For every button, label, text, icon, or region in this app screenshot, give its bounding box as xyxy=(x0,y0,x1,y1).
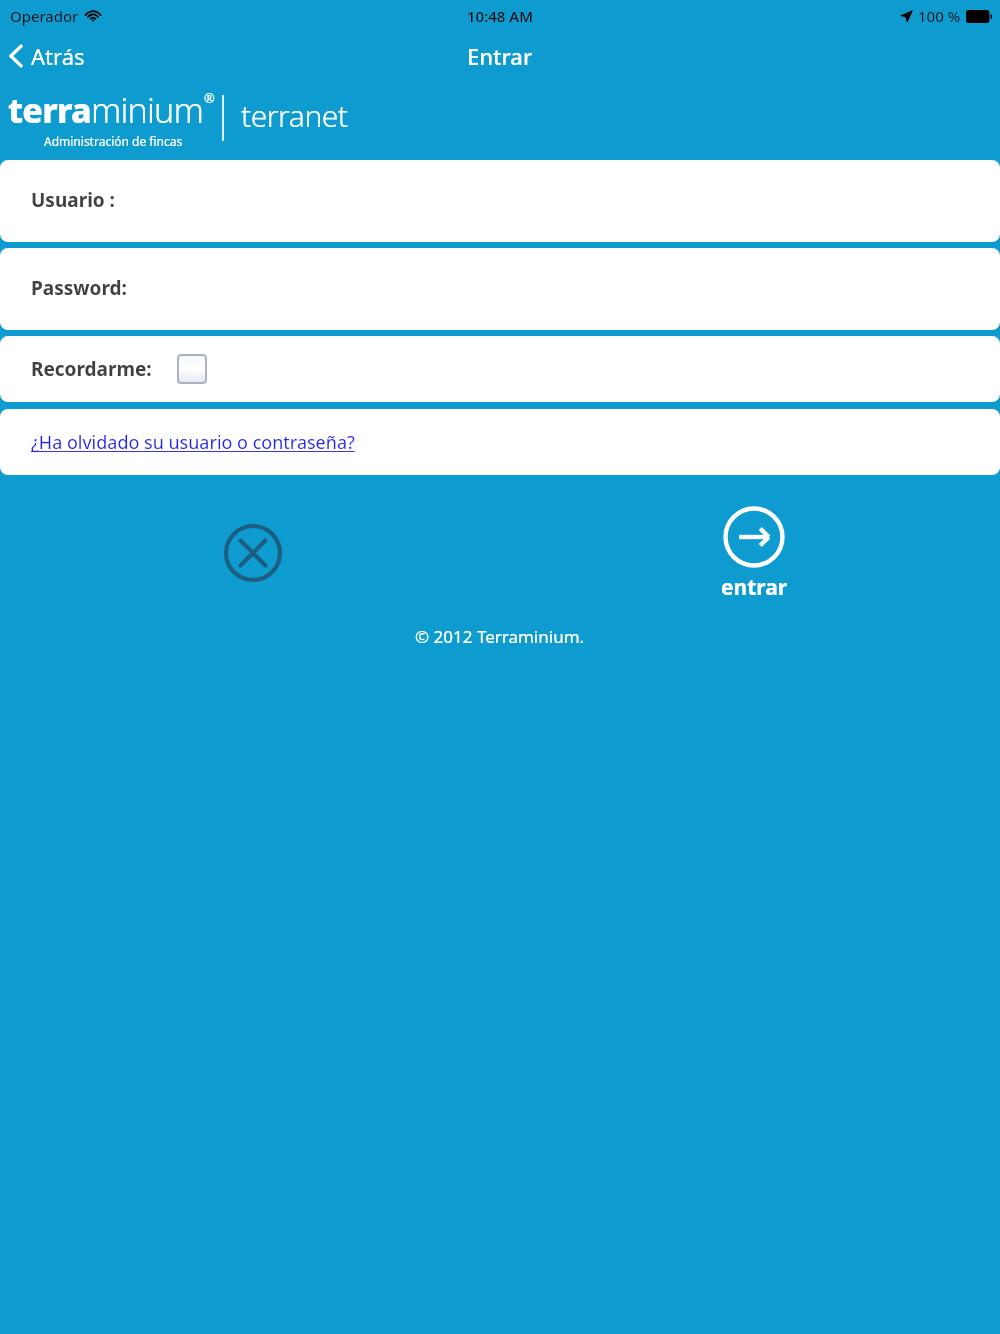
button[interactable]: Atrás xyxy=(0,35,97,77)
staticText: ¿Ha olvidado su usuario o contraseña? xyxy=(31,430,355,455)
button[interactable]: Cancelar xyxy=(216,516,290,590)
staticText: Usuario : xyxy=(31,187,115,213)
staticText: Entrar xyxy=(467,41,533,71)
staticText: © 2012 Terraminium. xyxy=(415,625,585,648)
staticText: 10:48 AM xyxy=(467,6,533,26)
staticText: Administración de fincas xyxy=(44,133,183,149)
staticText: terraminium xyxy=(8,87,204,133)
staticText: Operador xyxy=(10,6,79,26)
staticText: Password: xyxy=(31,275,127,301)
button[interactable]: ¿Ha olvidado su usuario o contraseña? xyxy=(31,430,355,455)
button[interactable] xyxy=(0,248,1000,330)
staticText: ® xyxy=(204,89,215,107)
button[interactable]: entrar xyxy=(714,505,794,602)
staticText: terranet xyxy=(241,95,348,136)
button[interactable] xyxy=(0,160,1000,242)
button[interactable]: Recordarme xyxy=(176,353,208,385)
staticText: 100 % xyxy=(918,6,961,26)
staticText: Recordarme: xyxy=(31,356,152,382)
staticText: Atrás xyxy=(31,41,85,71)
staticText: entrar xyxy=(721,573,788,602)
